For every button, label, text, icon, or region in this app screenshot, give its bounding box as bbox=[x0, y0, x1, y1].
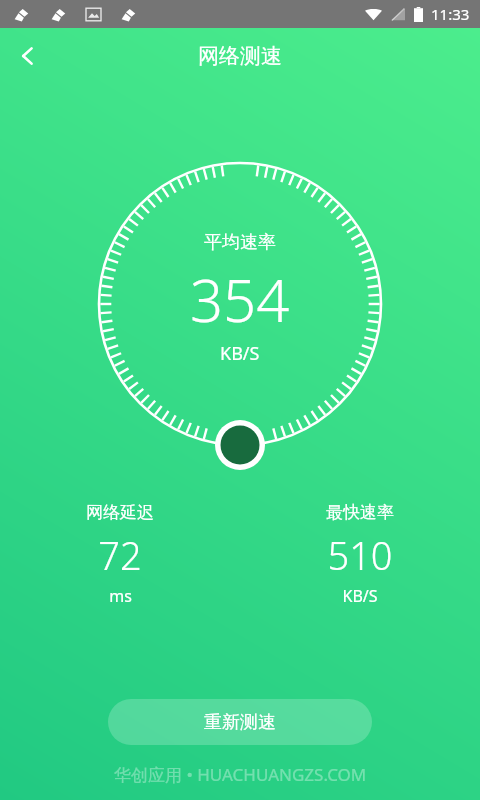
staticText: KB/S bbox=[220, 341, 260, 366]
button[interactable]: Back bbox=[0, 28, 56, 84]
staticText: 11:33 bbox=[431, 4, 470, 24]
staticText: 平均速率 bbox=[204, 231, 276, 254]
staticText: ms bbox=[109, 585, 132, 607]
staticText: 354 bbox=[190, 260, 290, 339]
staticText: KB/S bbox=[342, 585, 378, 607]
staticText: 最快速率 bbox=[326, 502, 394, 523]
staticText: 重新测速 bbox=[204, 711, 276, 734]
staticText: 网络延迟 bbox=[86, 502, 154, 523]
button[interactable]: 重新测速 bbox=[108, 699, 372, 745]
staticText: 华创应用 • HUACHUANGZS.COM bbox=[114, 763, 367, 786]
staticText: 网络测速 bbox=[198, 43, 282, 69]
staticText: 510 bbox=[327, 529, 393, 581]
staticText: 72 bbox=[98, 529, 142, 581]
